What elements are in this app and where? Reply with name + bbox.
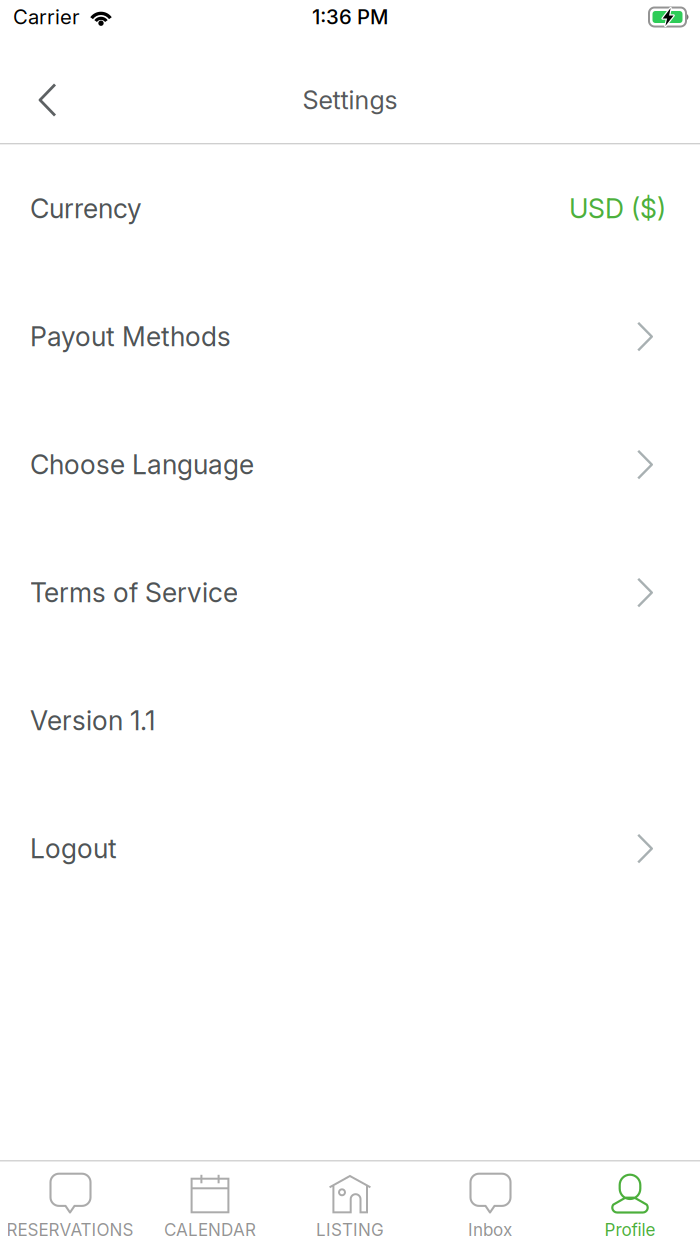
- staticText: 1:36 PM: [312, 5, 388, 29]
- button[interactable]: Version 1.1: [0, 657, 700, 785]
- button[interactable]: Inbox: [420, 1172, 560, 1242]
- staticText: CALENDAR: [164, 1219, 256, 1240]
- staticText: Terms of Service: [30, 576, 238, 609]
- staticText: Profile: [604, 1219, 655, 1240]
- button[interactable]: Choose Language: [0, 401, 700, 529]
- button[interactable]: Profile: [560, 1172, 700, 1242]
- staticText: Logout: [30, 832, 117, 865]
- staticText: Inbox: [468, 1219, 512, 1240]
- button[interactable]: Terms of Service: [0, 529, 700, 657]
- staticText: Payout Methods: [30, 320, 231, 353]
- button[interactable]: Payout Methods: [0, 273, 700, 401]
- staticText: Currency: [30, 192, 142, 225]
- staticText: LISTING: [316, 1219, 384, 1240]
- staticText: Settings: [302, 85, 397, 115]
- button[interactable]: Back: [0, 57, 81, 143]
- staticText: USD ($): [569, 192, 666, 225]
- staticText: Choose Language: [30, 448, 254, 481]
- button[interactable]: RESERVATIONS: [0, 1172, 140, 1242]
- button[interactable]: Logout: [0, 785, 700, 913]
- button[interactable]: LISTING: [280, 1172, 420, 1242]
- staticText: RESERVATIONS: [6, 1219, 133, 1240]
- staticText: Carrier: [13, 5, 80, 29]
- staticText: Version 1.1: [30, 704, 155, 737]
- button[interactable]: CALENDAR: [140, 1172, 280, 1242]
- button[interactable]: Currency: [0, 145, 700, 273]
